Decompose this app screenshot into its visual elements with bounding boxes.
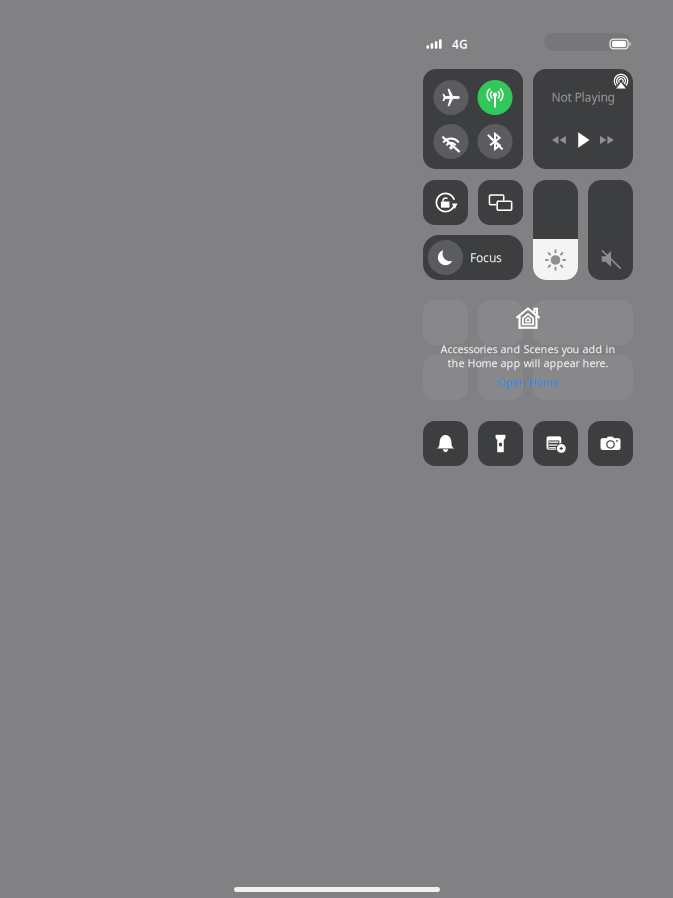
staticText: Not Playing	[551, 89, 614, 105]
button[interactable]: Cellular Data	[477, 80, 512, 115]
staticText: 4G	[452, 36, 468, 52]
button[interactable]: Notes	[533, 421, 578, 466]
button[interactable]: Screen Mirroring	[478, 180, 523, 225]
staticText: the Home app will appear here.	[447, 356, 608, 370]
button[interactable]: Bluetooth	[477, 124, 512, 159]
button[interactable]: Volume	[588, 180, 633, 280]
button[interactable]: Camera	[588, 421, 633, 466]
button[interactable]: AirPlay	[613, 73, 628, 88]
button[interactable]: Fast Forward	[595, 131, 619, 149]
button[interactable]: Focus	[423, 235, 523, 280]
button[interactable]: Brightness	[533, 180, 578, 280]
staticText: Focus	[470, 249, 502, 265]
button[interactable]: Play	[571, 131, 595, 149]
button[interactable]: Wi-Fi	[433, 124, 468, 159]
button[interactable]: Airplane Mode	[433, 80, 468, 115]
staticText: Accessories and Scenes you add in	[440, 342, 615, 356]
button[interactable]: Flashlight	[478, 421, 523, 466]
button[interactable]: Rotation Lock	[423, 180, 468, 225]
button[interactable]: Alarm	[423, 421, 468, 466]
button[interactable]: Open Home	[423, 374, 633, 390]
button[interactable]: Rewind	[547, 131, 571, 149]
staticText: Open Home	[497, 375, 558, 389]
